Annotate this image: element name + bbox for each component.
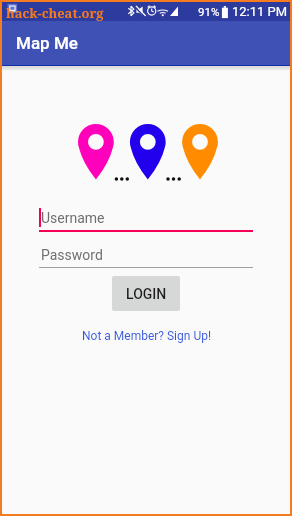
staticText: LOGIN — [126, 286, 167, 302]
button[interactable]: Not a Member? Sign Up! — [76, 327, 217, 345]
button[interactable]: Password — [39, 245, 253, 268]
staticText: Map Me — [16, 33, 78, 53]
staticText: 91% — [198, 5, 220, 18]
staticText: hack-cheat.org — [6, 4, 104, 22]
staticText: Not a Member? Sign Up! — [82, 329, 211, 343]
staticText: Password — [41, 247, 103, 263]
staticText: Username — [41, 210, 105, 226]
button[interactable]: Username — [39, 208, 253, 232]
staticText: 12:11 PM — [232, 4, 288, 19]
button[interactable]: LOGIN — [112, 276, 180, 311]
